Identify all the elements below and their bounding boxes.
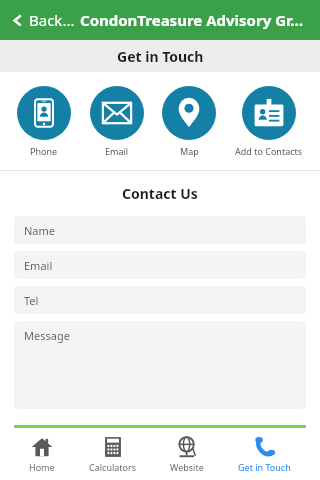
button[interactable]: Email (14, 251, 306, 279)
button[interactable]: Map (160, 84, 218, 159)
staticText: Get in Touch (117, 47, 204, 66)
staticText: Website (170, 461, 204, 473)
button[interactable]: Get in Touch (234, 433, 295, 476)
staticText: Calculators (89, 461, 137, 473)
staticText: Name (24, 223, 56, 238)
staticText: Phone (30, 145, 58, 157)
staticText: Email (24, 258, 53, 273)
button[interactable]: Website (166, 433, 208, 476)
staticText: Home (29, 461, 55, 473)
staticText: Back... (29, 10, 75, 30)
staticText: Map (180, 145, 199, 157)
staticText: Get in Touch (238, 461, 291, 473)
button[interactable]: Add to Contacts (233, 84, 305, 159)
button[interactable]: Email (88, 84, 146, 159)
staticText: Add to Contacts (235, 145, 303, 157)
staticText: Email (105, 145, 129, 157)
staticText: Message (24, 328, 70, 343)
button[interactable]: Home (25, 433, 59, 476)
staticText: Contact Us (122, 184, 198, 203)
staticText: Tel (24, 293, 39, 308)
button[interactable]: Message (14, 321, 306, 409)
button[interactable]: Phone (15, 84, 73, 159)
button[interactable]: Tel (14, 286, 306, 314)
button[interactable]: Back... (8, 6, 77, 34)
button[interactable]: Name (14, 216, 306, 244)
button[interactable]: Calculators (85, 433, 141, 476)
staticText: CondonTreasure Advisory Gr… (80, 10, 304, 30)
